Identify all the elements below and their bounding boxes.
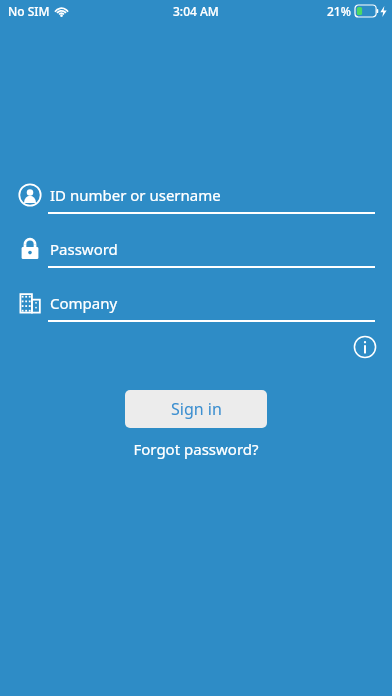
button[interactable]: ID number or username bbox=[0, 182, 392, 214]
staticText: Forgot password? bbox=[133, 439, 259, 459]
button[interactable]: Information bbox=[350, 332, 380, 362]
button[interactable]: Sign in bbox=[125, 390, 267, 428]
button[interactable]: Password bbox=[0, 236, 392, 268]
staticText: Company bbox=[50, 293, 118, 313]
staticText: ID number or username bbox=[50, 185, 221, 205]
button[interactable]: Company bbox=[0, 290, 392, 322]
staticText: 3:04 AM bbox=[173, 3, 219, 19]
staticText: No SIM bbox=[8, 3, 50, 19]
staticText: Sign in bbox=[171, 398, 222, 420]
staticText: Password bbox=[50, 239, 118, 259]
staticText: 21% bbox=[327, 3, 351, 19]
button[interactable]: Forgot password? bbox=[125, 437, 267, 461]
